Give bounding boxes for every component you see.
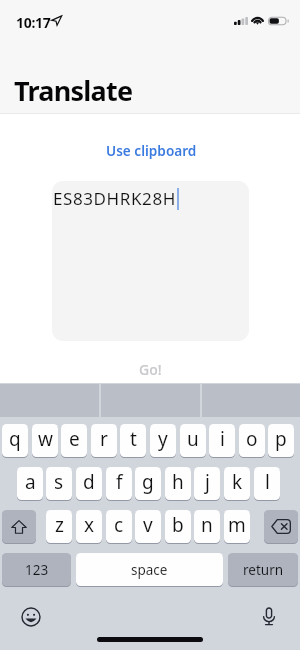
staticText: ES83DHRK28H <box>53 187 176 210</box>
button[interactable]: o <box>239 424 265 457</box>
staticText: u <box>187 426 199 452</box>
staticText: h <box>172 469 184 495</box>
button[interactable]: 123 <box>2 553 71 586</box>
button[interactable]: a <box>17 467 43 500</box>
button[interactable]: u <box>180 424 206 457</box>
staticText: j <box>205 469 210 495</box>
button[interactable]: ES83DHRK28H <box>52 181 249 341</box>
button[interactable]: j <box>194 467 220 500</box>
staticText: n <box>201 512 213 538</box>
button[interactable]: m <box>224 510 250 543</box>
staticText: x <box>84 512 95 538</box>
button[interactable]: i <box>209 424 235 457</box>
staticText: v <box>143 512 153 538</box>
button[interactable]: d <box>76 467 102 500</box>
button[interactable]: c <box>106 510 132 543</box>
staticText: m <box>228 512 246 538</box>
staticText: d <box>83 469 95 495</box>
button[interactable]: n <box>194 510 220 543</box>
button[interactable]: y <box>150 424 176 457</box>
staticText: w <box>38 426 53 452</box>
staticText: q <box>9 426 21 452</box>
button[interactable]: v <box>135 510 161 543</box>
staticText: g <box>142 469 154 495</box>
staticText: Go! <box>139 360 162 379</box>
button[interactable]: Use clipboard <box>100 138 203 163</box>
button[interactable]: l <box>254 467 280 500</box>
button[interactable]: Emoji keyboard <box>21 607 41 627</box>
button[interactable]: q <box>2 424 28 457</box>
button[interactable]: f <box>106 467 132 500</box>
button[interactable]: Backspace <box>264 510 298 543</box>
staticText: o <box>246 426 258 452</box>
button[interactable]: r <box>91 424 117 457</box>
button[interactable]: s <box>46 467 72 500</box>
button[interactable]: p <box>268 424 294 457</box>
button[interactable]: return <box>228 553 298 586</box>
button[interactable]: z <box>46 510 72 543</box>
button[interactable]: Shift <box>2 510 36 543</box>
staticText: Use clipboard <box>106 141 197 160</box>
staticText: l <box>265 469 270 495</box>
staticText: z <box>55 512 64 538</box>
staticText: b <box>172 512 184 538</box>
button[interactable]: g <box>135 467 161 500</box>
button[interactable]: b <box>165 510 191 543</box>
button[interactable]: w <box>32 424 58 457</box>
staticText: r <box>100 426 108 452</box>
button[interactable]: t <box>120 424 146 457</box>
staticText: p <box>275 426 287 452</box>
staticText: 10:17 <box>16 13 51 32</box>
staticText: return <box>243 561 284 579</box>
staticText: f <box>116 469 123 495</box>
staticText: t <box>130 426 137 452</box>
button[interactable]: x <box>76 510 102 543</box>
button[interactable]: k <box>224 467 250 500</box>
staticText: Translate <box>14 72 133 109</box>
button[interactable]: e <box>61 424 87 457</box>
button[interactable]: space <box>76 553 223 586</box>
staticText: y <box>158 426 168 452</box>
staticText: s <box>54 469 64 495</box>
button[interactable]: Dictation <box>259 606 279 626</box>
staticText: e <box>69 426 80 452</box>
button[interactable]: h <box>165 467 191 500</box>
staticText: 123 <box>25 561 49 579</box>
staticText: c <box>114 512 124 538</box>
staticText: k <box>232 469 243 495</box>
staticText: a <box>25 469 36 495</box>
staticText: i <box>220 426 225 452</box>
staticText: space <box>131 561 168 579</box>
